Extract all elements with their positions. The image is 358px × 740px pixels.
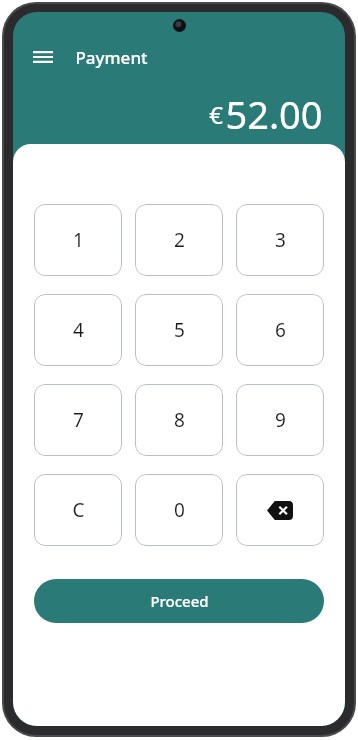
button[interactable]: 8: [135, 384, 223, 456]
staticText: 5: [174, 317, 185, 343]
staticText: 52.00: [225, 88, 323, 140]
button[interactable]: 9: [236, 384, 324, 456]
button[interactable]: 5: [135, 294, 223, 366]
staticText: Payment: [75, 46, 148, 69]
button[interactable]: 1: [34, 204, 122, 276]
button[interactable]: Menu: [23, 37, 63, 77]
staticText: 4: [73, 317, 84, 343]
staticText: 1: [73, 227, 84, 253]
button[interactable]: 0: [135, 474, 223, 546]
button[interactable]: 6: [236, 294, 324, 366]
button[interactable]: 3: [236, 204, 324, 276]
staticText: 7: [73, 407, 84, 433]
staticText: 0: [174, 497, 185, 523]
button[interactable]: Backspace: [236, 474, 324, 546]
staticText: C: [72, 497, 85, 523]
staticText: Proceed: [150, 591, 209, 611]
button[interactable]: Proceed: [34, 579, 324, 623]
staticText: 6: [275, 317, 286, 343]
button[interactable]: 2: [135, 204, 223, 276]
staticText: €: [209, 98, 223, 131]
staticText: 2: [174, 227, 185, 253]
staticText: 8: [174, 407, 185, 433]
button[interactable]: C: [34, 474, 122, 546]
staticText: 3: [275, 227, 286, 253]
staticText: 9: [275, 407, 286, 433]
button[interactable]: 7: [34, 384, 122, 456]
button[interactable]: 4: [34, 294, 122, 366]
